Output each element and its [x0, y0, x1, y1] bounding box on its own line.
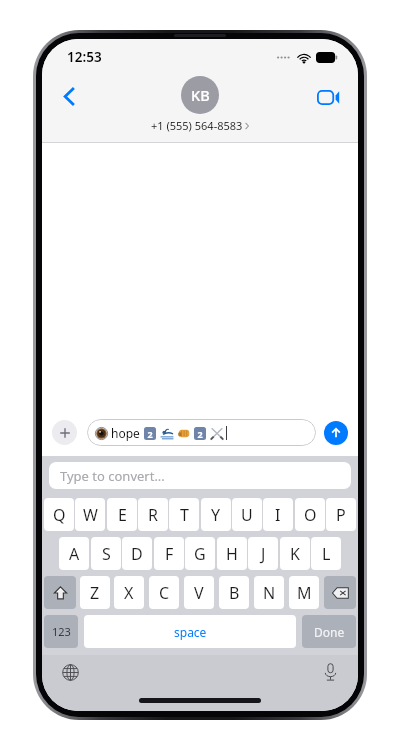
- staticText: Z: [90, 582, 100, 604]
- button[interactable]: C: [149, 576, 179, 609]
- button[interactable]: Backspace: [324, 576, 356, 609]
- button[interactable]: FaceTime video call: [314, 82, 344, 112]
- button[interactable]: B: [219, 576, 249, 609]
- staticText: W: [83, 504, 98, 526]
- button[interactable]: S: [91, 537, 121, 570]
- staticText: K: [290, 543, 300, 565]
- button[interactable]: F: [154, 537, 184, 570]
- staticText: G: [194, 543, 206, 565]
- button[interactable]: J: [248, 537, 278, 570]
- button[interactable]: R: [138, 498, 168, 531]
- button[interactable]: Send: [324, 421, 348, 445]
- button[interactable]: G: [185, 537, 215, 570]
- button[interactable]: Z: [80, 576, 110, 609]
- button[interactable]: Change keyboard language: [56, 658, 84, 686]
- button[interactable]: E: [107, 498, 137, 531]
- staticText: Type to convert...: [60, 467, 165, 485]
- staticText: X: [124, 582, 134, 604]
- staticText: V: [194, 582, 204, 604]
- staticText: P: [336, 504, 346, 526]
- staticText: E: [118, 504, 127, 526]
- staticText: hope: [111, 425, 140, 441]
- staticText: B: [229, 582, 240, 604]
- button[interactable]: M: [289, 576, 319, 609]
- staticText: 123: [52, 624, 71, 639]
- button[interactable]: K: [280, 537, 310, 570]
- button[interactable]: N: [254, 576, 284, 609]
- button[interactable]: space: [84, 615, 296, 648]
- button[interactable]: hope: [87, 419, 316, 446]
- staticText: U: [241, 504, 253, 526]
- staticText: 2: [197, 428, 203, 440]
- staticText: H: [226, 543, 238, 565]
- staticText: J: [261, 543, 266, 565]
- staticText: N: [263, 582, 276, 604]
- button[interactable]: D: [122, 537, 152, 570]
- button[interactable]: L: [311, 537, 341, 570]
- staticText: +1 (555) 564-8583: [151, 118, 243, 133]
- staticText: space: [174, 624, 207, 640]
- button[interactable]: Done: [302, 615, 356, 648]
- button[interactable]: P: [326, 498, 356, 531]
- button[interactable]: A: [59, 537, 89, 570]
- button[interactable]: I: [263, 498, 293, 531]
- button[interactable]: O: [295, 498, 325, 531]
- button[interactable]: Q: [44, 498, 74, 531]
- staticText: O: [304, 504, 317, 526]
- button[interactable]: Dictate: [316, 658, 344, 686]
- staticText: S: [102, 543, 111, 565]
- staticText: 12:53: [67, 48, 102, 66]
- staticText: T: [180, 504, 189, 526]
- staticText: I: [275, 504, 281, 526]
- button[interactable]: T: [169, 498, 199, 531]
- button[interactable]: H: [217, 537, 247, 570]
- staticText: Q: [53, 504, 66, 526]
- staticText: Y: [211, 504, 221, 526]
- button[interactable]: V: [184, 576, 214, 609]
- staticText: R: [148, 504, 158, 526]
- staticText: KB: [191, 85, 210, 105]
- staticText: D: [131, 543, 143, 565]
- button[interactable]: Back: [53, 80, 85, 112]
- button[interactable]: U: [232, 498, 262, 531]
- staticText: A: [69, 543, 80, 565]
- staticText: L: [322, 543, 331, 565]
- button[interactable]: 123: [44, 615, 78, 648]
- staticText: F: [165, 543, 174, 565]
- button[interactable]: X: [114, 576, 144, 609]
- staticText: M: [297, 582, 312, 604]
- button[interactable]: W: [75, 498, 105, 531]
- staticText: Done: [314, 624, 345, 640]
- button[interactable]: Y: [201, 498, 231, 531]
- button[interactable]: Type to convert...: [49, 462, 351, 489]
- staticText: 2: [147, 428, 153, 440]
- button[interactable]: Add attachment: [52, 420, 77, 445]
- button[interactable]: Shift: [44, 576, 76, 609]
- button[interactable]: KB: [181, 76, 219, 114]
- staticText: C: [159, 582, 170, 604]
